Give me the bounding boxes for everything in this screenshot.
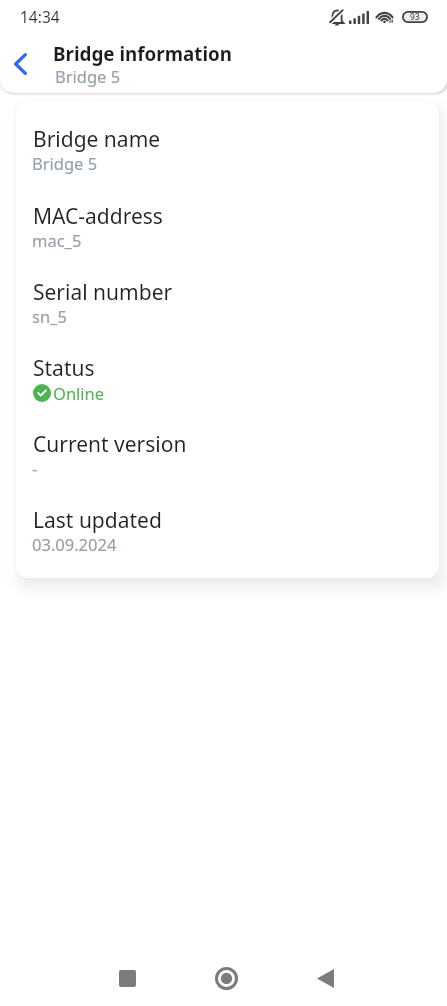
staticText: Status (33, 354, 95, 383)
button[interactable]: Back (302, 955, 348, 1001)
staticText: MAC-address (33, 202, 163, 231)
button[interactable]: Recent apps (104, 955, 150, 1001)
staticText: Current version (33, 430, 187, 459)
staticText: Online (53, 382, 105, 404)
staticText: Bridge 5 (55, 65, 121, 87)
staticText: 14:34 (20, 6, 60, 27)
staticText: Bridge name (33, 125, 161, 154)
staticText: 93 (410, 11, 420, 23)
staticText: - (32, 457, 38, 479)
staticText: sn_5 (32, 305, 67, 327)
staticText: Serial number (33, 278, 173, 307)
staticText: Bridge 5 (32, 152, 98, 174)
staticText: mac_5 (32, 229, 82, 251)
button[interactable]: Home (203, 955, 249, 1001)
staticText: Last updated (33, 506, 162, 535)
button[interactable]: Back (2, 46, 38, 82)
staticText: Bridge information (53, 41, 232, 67)
staticText: 03.09.2024 (32, 533, 117, 555)
